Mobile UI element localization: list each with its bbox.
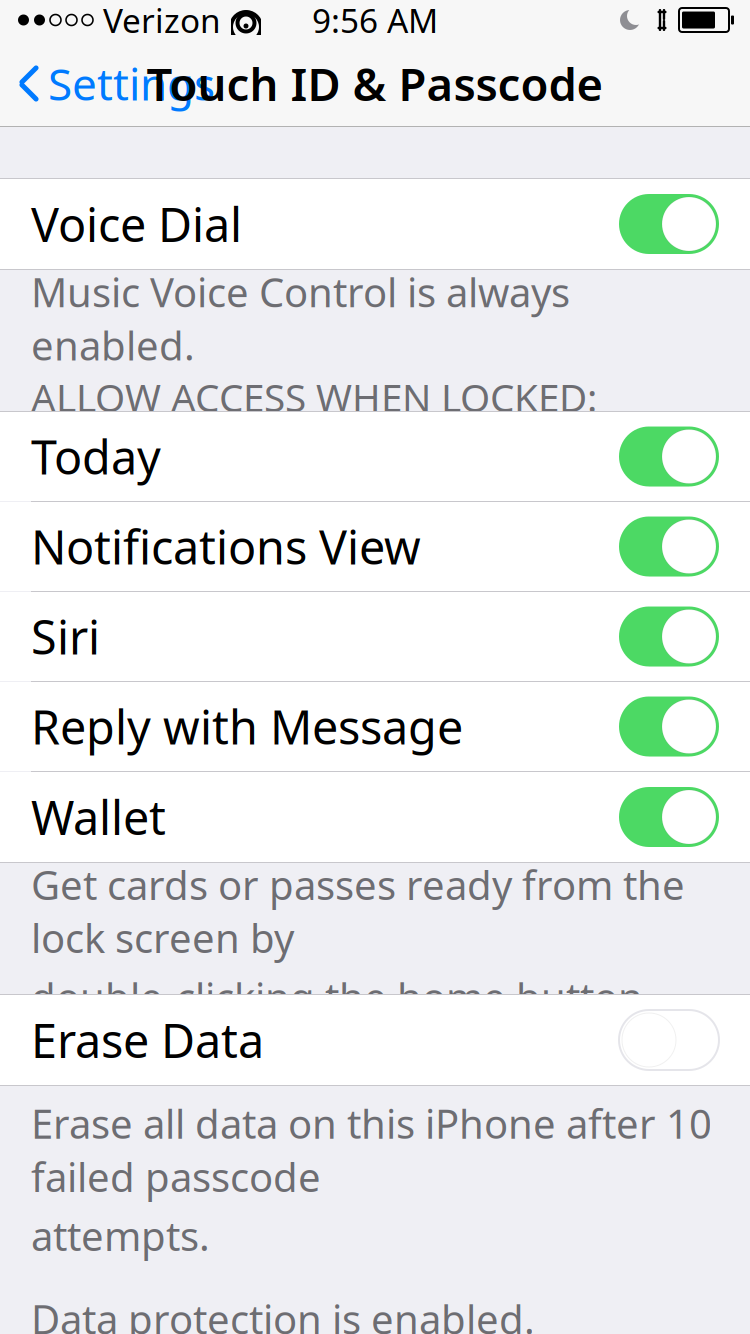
button[interactable]: Wallet (0, 772, 750, 862)
staticText: Today (31, 425, 161, 487)
staticText: Data protection is enabled. (31, 1292, 535, 1334)
staticText: Siri (31, 605, 100, 667)
button[interactable]: Erase Data (0, 995, 750, 1085)
staticText: Voice Dial (31, 193, 242, 255)
button[interactable]: Notifications View (0, 502, 750, 592)
staticText: Wallet (31, 786, 166, 848)
staticText: Touch ID & Passcode (146, 53, 603, 114)
staticText: Reply with Message (31, 695, 463, 757)
button[interactable]: Settings (0, 46, 215, 121)
button[interactable]: Reply with Message (0, 682, 750, 772)
button[interactable]: Today (0, 412, 750, 502)
staticText: double-clicking the home button. (31, 970, 654, 1023)
staticText: Notifications View (31, 515, 421, 577)
staticText: Erase all data on this iPhone after 10 f… (31, 1097, 712, 1203)
staticText: 9:56 AM (312, 0, 438, 42)
staticText: Get cards or passes ready from the lock … (31, 858, 685, 964)
button[interactable]: Siri (0, 592, 750, 682)
staticText: Erase Data (31, 1009, 264, 1071)
staticText: Verizon (103, 0, 221, 42)
staticText: attempts. (31, 1209, 210, 1262)
staticText: Music Voice Control is always enabled. (31, 265, 570, 371)
button[interactable]: Voice Dial (0, 179, 750, 269)
staticText: ALLOW ACCESS WHEN LOCKED: (31, 371, 597, 423)
staticText: Settings (48, 54, 215, 113)
